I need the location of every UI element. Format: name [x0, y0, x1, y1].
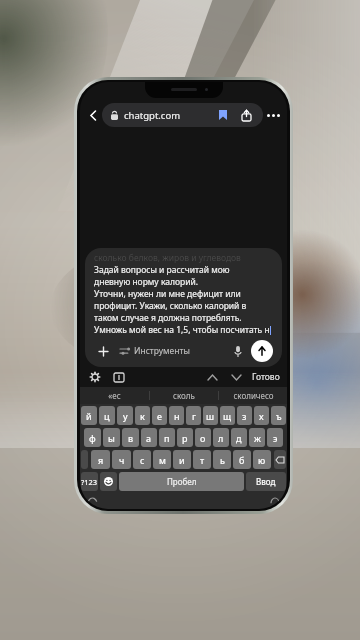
- button[interactable]: Previous: [204, 369, 220, 385]
- staticText: Задай вопросы и рассчитай мою: [94, 264, 230, 276]
- button[interactable]: т: [193, 450, 211, 469]
- staticText: дневную норму калорий.: [94, 276, 199, 288]
- button[interactable]: сколичесо: [219, 387, 287, 404]
- button[interactable]: Settings: [87, 369, 103, 385]
- button[interactable]: Backspace: [274, 450, 286, 469]
- button[interactable]: о: [195, 428, 211, 447]
- staticText: ?123: [81, 477, 98, 487]
- button[interactable]: ю: [253, 450, 271, 469]
- button[interactable]: ж: [249, 428, 265, 447]
- button[interactable]: п: [159, 428, 175, 447]
- staticText: н: [174, 410, 180, 422]
- button[interactable]: Ввод: [246, 472, 286, 491]
- staticText: я: [98, 454, 104, 466]
- button[interactable]: м: [153, 450, 171, 469]
- staticText: м: [159, 454, 166, 466]
- button[interactable]: Emoji: [100, 472, 117, 491]
- button[interactable]: я: [91, 450, 110, 469]
- staticText: сколь: [173, 390, 195, 401]
- button[interactable]: ч: [112, 450, 131, 469]
- button[interactable]: а: [141, 428, 157, 447]
- staticText: е: [157, 410, 162, 422]
- button[interactable]: е: [152, 406, 167, 425]
- button[interactable]: Инструменты: [118, 345, 192, 357]
- staticText: ь: [220, 454, 225, 466]
- staticText: г: [192, 410, 196, 422]
- button[interactable]: Shift: [81, 450, 88, 469]
- button[interactable]: Voice input: [229, 342, 247, 360]
- button[interactable]: сколь: [150, 387, 218, 404]
- button[interactable]: с: [133, 450, 151, 469]
- button[interactable]: ?123: [81, 472, 98, 491]
- button[interactable]: в: [122, 428, 139, 447]
- staticText: л: [218, 432, 224, 444]
- button[interactable]: н: [169, 406, 184, 425]
- button[interactable]: ш: [203, 406, 218, 425]
- button[interactable]: ы: [103, 428, 120, 447]
- staticText: о: [200, 432, 206, 444]
- staticText: с: [140, 454, 145, 466]
- staticText: Ввод: [256, 476, 276, 487]
- button[interactable]: э: [267, 428, 283, 447]
- button[interactable]: Bookmark: [215, 107, 231, 123]
- staticText: ы: [108, 432, 115, 444]
- staticText: ф: [89, 432, 96, 444]
- staticText: Пробел: [167, 476, 197, 487]
- button[interactable]: р: [177, 428, 193, 447]
- button[interactable]: «ес: [80, 387, 149, 404]
- button[interactable]: б: [233, 450, 251, 469]
- staticText: ъ: [276, 410, 282, 422]
- staticText: профицит. Укажи, сколько калорий в: [94, 300, 247, 312]
- staticText: а: [146, 432, 152, 444]
- button[interactable]: Share: [238, 107, 254, 123]
- staticText: Уточни, нужен ли мне дефицит или: [94, 288, 241, 300]
- staticText: д: [236, 432, 242, 444]
- button[interactable]: Пробел: [119, 472, 244, 491]
- button[interactable]: и: [173, 450, 191, 469]
- staticText: з: [242, 410, 247, 422]
- staticText: «ес: [108, 390, 121, 401]
- staticText: р: [182, 432, 188, 444]
- staticText: у: [123, 410, 128, 422]
- staticText: ц: [104, 410, 110, 422]
- button[interactable]: д: [231, 428, 247, 447]
- button[interactable]: Send: [251, 340, 273, 362]
- button[interactable]: More options: [263, 105, 283, 125]
- staticText: chatgpt.com: [124, 109, 181, 122]
- staticText: таком случае я должна потреблять.: [94, 312, 242, 324]
- button[interactable]: у: [117, 406, 133, 425]
- staticText: б: [239, 454, 245, 466]
- button[interactable]: л: [213, 428, 229, 447]
- staticText: й: [86, 410, 92, 422]
- staticText: ш: [206, 410, 215, 422]
- staticText: ю: [258, 454, 266, 466]
- staticText: э: [273, 432, 278, 444]
- staticText: т: [200, 454, 205, 466]
- button[interactable]: ф: [84, 428, 101, 447]
- button[interactable]: Back: [84, 106, 102, 124]
- staticText: в: [128, 432, 134, 444]
- button[interactable]: г: [186, 406, 201, 425]
- staticText: х: [259, 410, 264, 422]
- button[interactable]: Готово: [252, 371, 280, 383]
- staticText: п: [164, 432, 170, 444]
- button[interactable]: ъ: [271, 406, 286, 425]
- staticText: ж: [254, 432, 261, 444]
- staticText: сколько белков, жиров и углеводов: [94, 252, 241, 264]
- button[interactable]: chatgpt.com: [102, 103, 263, 127]
- button[interactable]: ь: [213, 450, 231, 469]
- button[interactable]: х: [254, 406, 269, 425]
- button[interactable]: Next: [228, 369, 244, 385]
- staticText: Инструменты: [134, 345, 190, 357]
- button[interactable]: з: [237, 406, 252, 425]
- staticText: щ: [223, 410, 232, 422]
- button[interactable]: к: [135, 406, 150, 425]
- button[interactable]: й: [81, 406, 97, 425]
- button[interactable]: щ: [220, 406, 235, 425]
- button[interactable]: Add attachment: [94, 342, 112, 360]
- staticText: Умножь мой вес на 1,5, чтобы посчитать н: [94, 324, 270, 336]
- staticText: к: [140, 410, 145, 422]
- button[interactable]: Keyboard layout: [111, 369, 127, 385]
- staticText: и: [179, 454, 185, 466]
- button[interactable]: ц: [99, 406, 115, 425]
